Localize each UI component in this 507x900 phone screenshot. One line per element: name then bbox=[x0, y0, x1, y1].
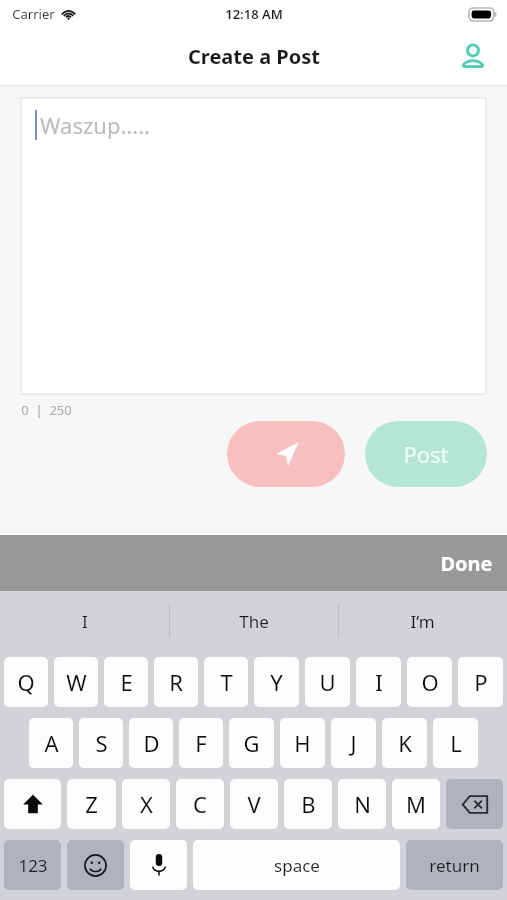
staticText: W bbox=[66, 667, 87, 697]
staticText: B bbox=[301, 789, 316, 819]
button[interactable]: I bbox=[0, 591, 169, 651]
staticText: Post bbox=[403, 439, 449, 469]
button[interactable]: D bbox=[129, 718, 173, 768]
staticText: X bbox=[140, 789, 153, 819]
staticText: E bbox=[120, 667, 133, 697]
staticText: 12:18 AM bbox=[225, 5, 283, 23]
button[interactable]: Backspace bbox=[446, 779, 503, 829]
staticText: Waszup..... bbox=[40, 110, 150, 140]
staticText: Y bbox=[270, 667, 283, 697]
button[interactable]: F bbox=[179, 718, 223, 768]
staticText: Create a Post bbox=[188, 43, 320, 70]
staticText: Z bbox=[85, 789, 98, 819]
button[interactable]: J bbox=[331, 718, 376, 768]
staticText: M bbox=[406, 789, 426, 819]
staticText: O bbox=[421, 667, 439, 697]
button[interactable]: Profile bbox=[451, 35, 495, 79]
button[interactable]: Dictation bbox=[130, 840, 187, 890]
button[interactable]: W bbox=[54, 657, 98, 707]
button[interactable]: I’m bbox=[338, 591, 507, 651]
staticText: Carrier bbox=[12, 5, 55, 23]
button[interactable]: E bbox=[104, 657, 148, 707]
button[interactable]: X bbox=[122, 779, 170, 829]
button[interactable]: Q bbox=[4, 657, 48, 707]
staticText: R bbox=[169, 667, 183, 697]
staticText: I bbox=[375, 667, 383, 697]
button[interactable]: R bbox=[154, 657, 198, 707]
button[interactable]: Waszup..... bbox=[21, 98, 486, 394]
button[interactable]: K bbox=[382, 718, 427, 768]
button[interactable]: Post bbox=[365, 421, 487, 487]
button[interactable]: The bbox=[169, 591, 338, 651]
staticText: space bbox=[274, 854, 320, 877]
button[interactable]: T bbox=[204, 657, 248, 707]
button[interactable]: Y bbox=[254, 657, 299, 707]
button[interactable]: V bbox=[230, 779, 278, 829]
staticText: I bbox=[82, 610, 88, 633]
button[interactable]: space bbox=[193, 840, 400, 890]
button[interactable]: O bbox=[407, 657, 452, 707]
button[interactable]: 123 bbox=[4, 840, 61, 890]
button[interactable]: Emoji bbox=[67, 840, 124, 890]
staticText: 0 | 250 bbox=[21, 401, 72, 419]
staticText: A bbox=[44, 728, 59, 758]
button[interactable]: A bbox=[29, 718, 73, 768]
staticText: D bbox=[143, 728, 160, 758]
staticText: S bbox=[95, 728, 108, 758]
staticText: Q bbox=[17, 667, 35, 697]
staticText: T bbox=[220, 667, 233, 697]
button[interactable]: P bbox=[458, 657, 503, 707]
staticText: return bbox=[429, 854, 480, 877]
button[interactable]: N bbox=[338, 779, 386, 829]
staticText: V bbox=[247, 789, 261, 819]
staticText: G bbox=[243, 728, 260, 758]
button[interactable]: I bbox=[356, 657, 401, 707]
button[interactable]: M bbox=[392, 779, 440, 829]
button[interactable]: G bbox=[229, 718, 274, 768]
staticText: I’m bbox=[410, 610, 435, 633]
button[interactable]: Send location bbox=[227, 421, 345, 487]
staticText: Done bbox=[440, 550, 493, 577]
staticText: P bbox=[474, 667, 488, 697]
button[interactable]: U bbox=[305, 657, 350, 707]
staticText: The bbox=[239, 610, 269, 633]
button[interactable]: L bbox=[433, 718, 478, 768]
button[interactable]: B bbox=[284, 779, 332, 829]
staticText: J bbox=[350, 728, 357, 758]
staticText: N bbox=[354, 789, 371, 819]
staticText: C bbox=[193, 789, 207, 819]
staticText: L bbox=[450, 728, 462, 758]
staticText: F bbox=[195, 728, 207, 758]
button[interactable]: Shift bbox=[4, 779, 61, 829]
button[interactable]: return bbox=[406, 840, 503, 890]
button[interactable]: S bbox=[79, 718, 123, 768]
staticText: U bbox=[319, 667, 336, 697]
button[interactable]: C bbox=[176, 779, 224, 829]
button[interactable]: Done bbox=[0, 535, 507, 591]
staticText: H bbox=[294, 728, 311, 758]
staticText: 123 bbox=[18, 854, 48, 877]
button[interactable]: H bbox=[280, 718, 325, 768]
staticText: K bbox=[398, 728, 412, 758]
button[interactable]: Z bbox=[67, 779, 116, 829]
